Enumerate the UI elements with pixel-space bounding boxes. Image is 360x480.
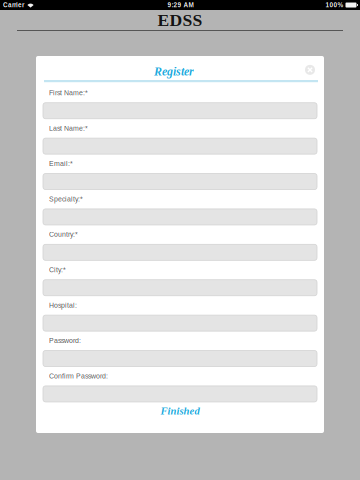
staticText: First Name:* [49,89,88,97]
staticText: Hospital: [49,301,77,309]
staticText: Country:* [49,231,78,238]
staticText: Confirm Password: [49,372,108,380]
staticText: 9:29 AM [167,1,193,8]
staticText: City:* [49,266,66,274]
staticText: Specialty:* [49,195,83,203]
staticText: Password: [49,337,81,344]
staticText: Email:* [49,160,73,167]
staticText: Register [154,65,194,78]
staticText: Last Name:* [49,124,88,132]
staticText: Finished [160,405,199,417]
staticText: EDSS [157,10,202,30]
button[interactable]: Close [300,65,320,78]
staticText: 100% [325,1,343,8]
button[interactable]: Finished [160,405,199,417]
staticText: Carrier [3,1,24,8]
